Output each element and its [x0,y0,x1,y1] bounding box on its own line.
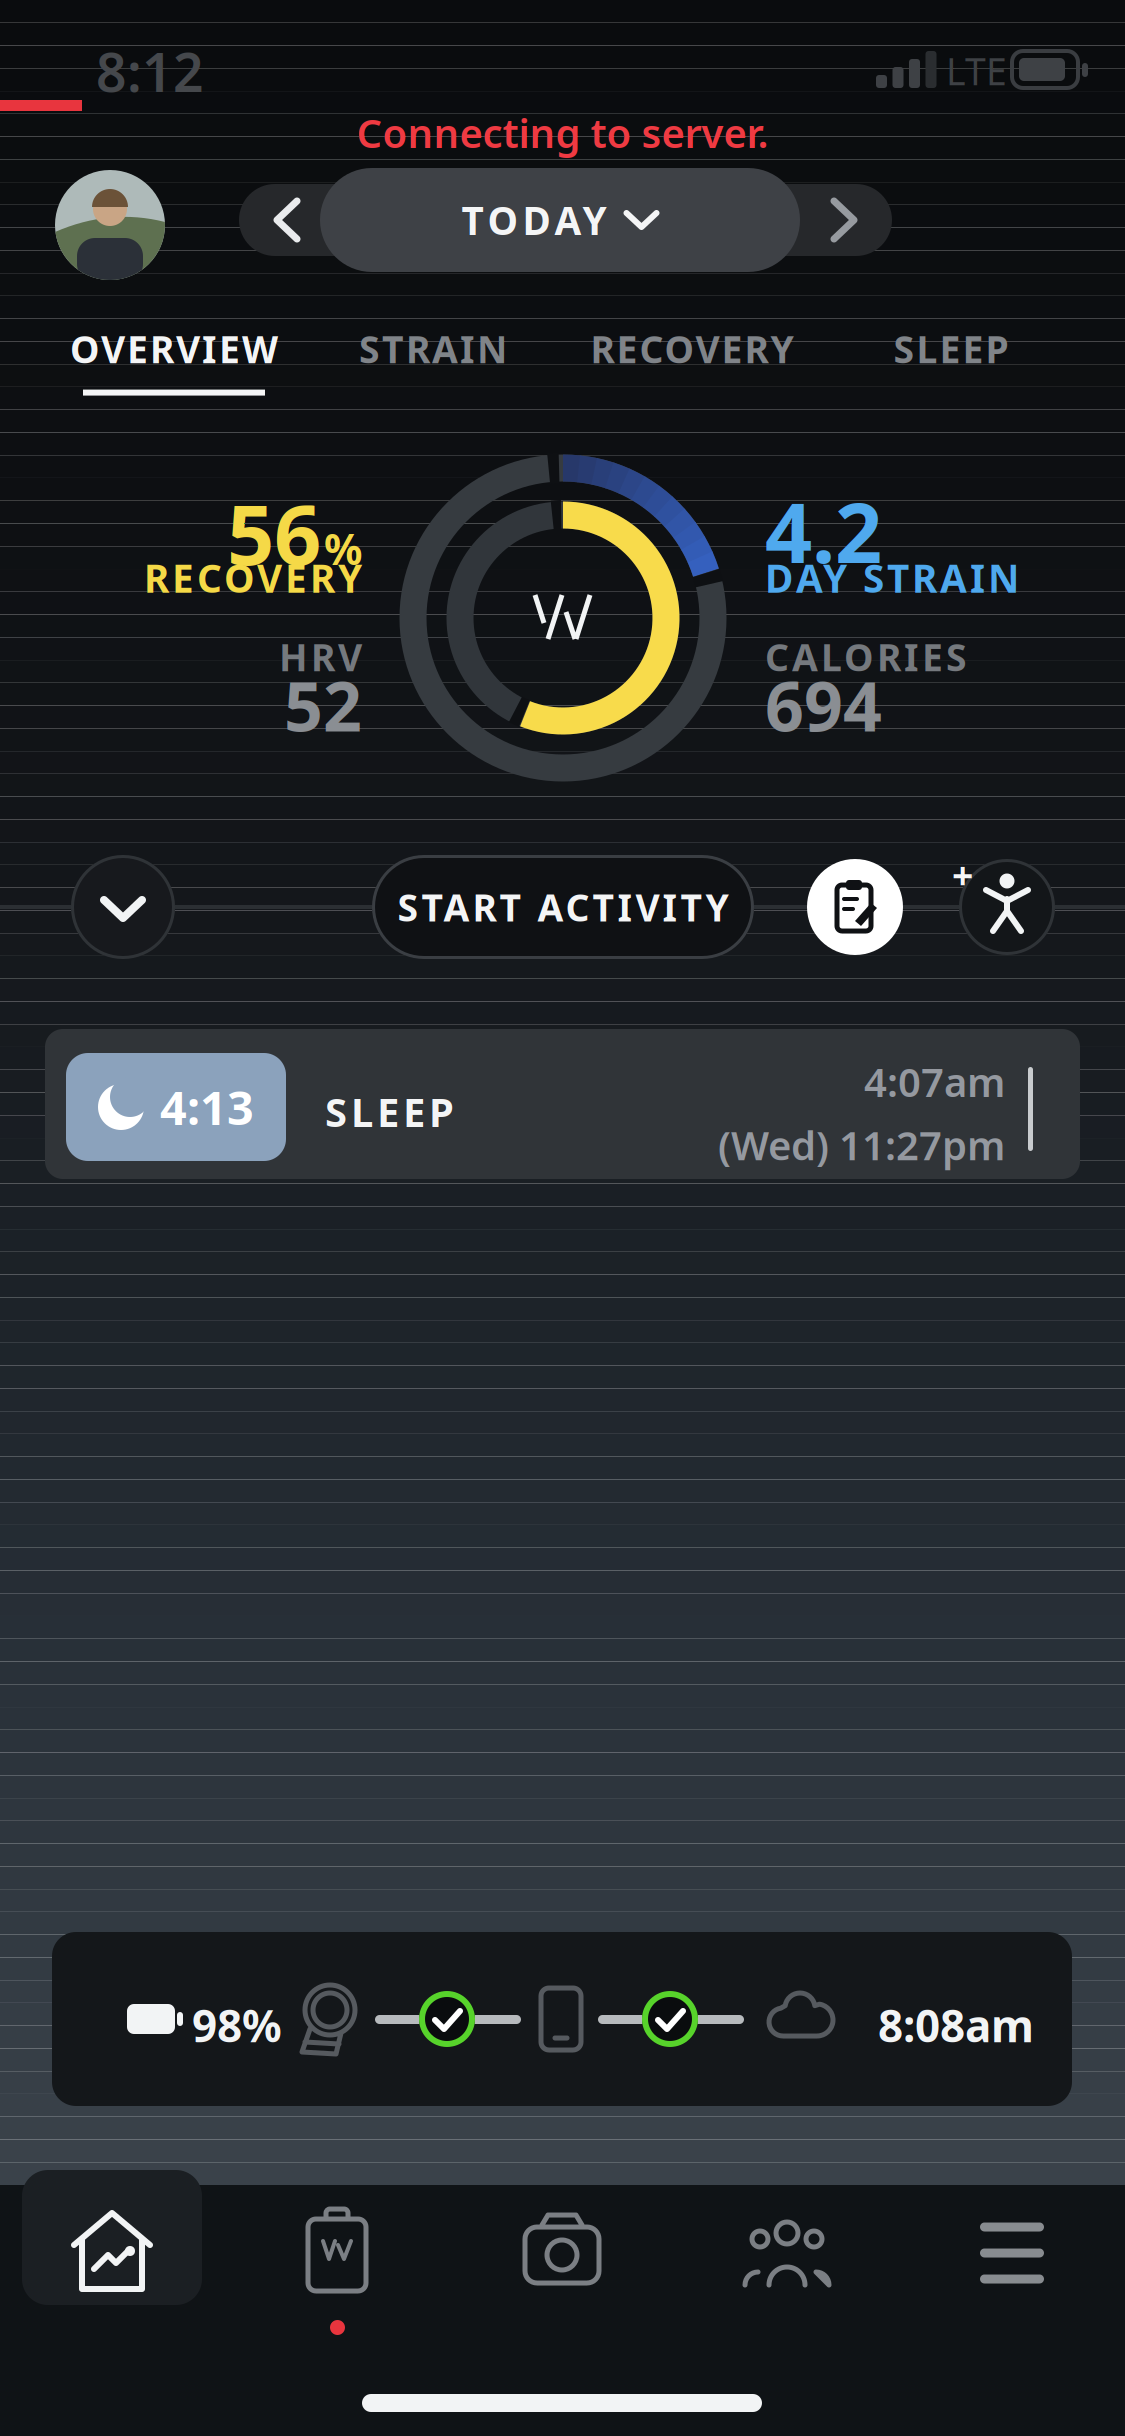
button[interactable]: SLEEP [821,324,1080,396]
button[interactable]: Home [52,2193,172,2313]
staticText: START ACTIVITY [397,882,728,932]
button[interactable]: Select date [320,168,800,272]
button[interactable]: Previous day [239,184,335,256]
staticText: SLEEP [893,324,1008,374]
staticText: SLEEP [325,1085,454,1138]
button[interactable]: Profile [55,170,165,280]
button[interactable]: Next day [796,184,892,256]
staticText: Connecting to server. [356,106,768,159]
staticText: 56 [227,478,321,588]
staticText: 8:08am [878,1996,1034,2054]
staticText: (Wed) 11:27pm [718,1118,1005,1171]
staticText: 52 [284,660,362,750]
button[interactable]: Community [727,2193,847,2313]
staticText: 4.2 [765,476,882,586]
button[interactable]: 4:13 [45,1029,1080,1179]
button[interactable]: Add behavior [959,859,1055,955]
button[interactable]: Collapse [71,855,175,959]
button[interactable]: RECOVERY [562,324,821,396]
staticText: RECOVERY [144,552,362,603]
staticText: 98% [192,1996,282,2054]
staticText: HRV [279,632,362,682]
staticText: DAY STRAIN [765,552,1019,603]
staticText: OVERVIEW [70,324,278,374]
button[interactable]: OVERVIEW [44,324,303,396]
staticText: TODAY [461,194,606,246]
staticText: + [952,850,973,900]
staticText: RECOVERY [590,324,793,374]
staticText: 8:12 [96,36,204,107]
button[interactable]: More [952,2193,1072,2313]
staticText: 4:07am [864,1055,1005,1108]
button[interactable]: Log activity [807,859,903,955]
button[interactable]: START ACTIVITY [372,855,754,959]
staticText: LTE [946,46,1007,96]
staticText: STRAIN [359,324,507,374]
staticText: CALORIES [765,632,967,682]
button[interactable]: Plan [277,2193,397,2313]
button[interactable]: Camera [502,2193,622,2313]
staticText: 694 [765,660,882,750]
staticText: 4:13 [160,1076,254,1138]
staticText: % [324,520,362,577]
button[interactable]: STRAIN [303,324,562,396]
